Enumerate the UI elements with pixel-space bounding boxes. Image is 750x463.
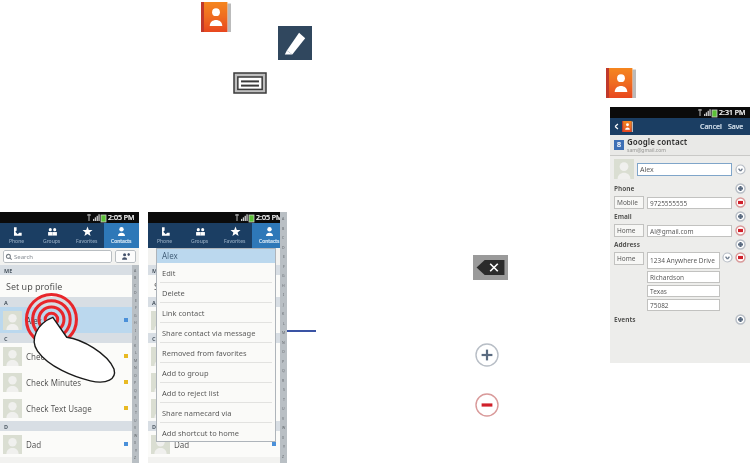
staticText: Search	[14, 253, 33, 261]
button[interactable]: Check Minutes	[3, 369, 136, 395]
staticText: Dad	[174, 439, 272, 450]
staticText: X	[134, 440, 137, 445]
staticText: A	[4, 299, 8, 306]
button[interactable]: Texas	[650, 285, 717, 297]
button[interactable]: Add shortcut to home	[162, 423, 276, 442]
button[interactable]: Richardson	[650, 271, 717, 283]
staticText: D	[282, 245, 285, 250]
button[interactable]: Check Minutes	[151, 369, 284, 395]
button[interactable]: Remove	[735, 252, 746, 263]
staticText: Phone	[9, 238, 25, 245]
button[interactable]: Removed from favorites	[162, 343, 276, 362]
button[interactable]: Back	[613, 123, 620, 130]
button[interactable]: Check Balance	[151, 343, 284, 369]
staticText: R	[134, 395, 137, 400]
staticText: C	[152, 335, 156, 342]
button[interactable]: Add	[735, 183, 746, 194]
staticText: Add to reject list	[162, 388, 219, 398]
staticText: Alex	[26, 315, 124, 326]
button[interactable]: Check Text Usage	[151, 395, 284, 421]
button[interactable]: 9725555555	[650, 197, 729, 209]
button[interactable]: Expand	[735, 164, 746, 175]
button[interactable]: Phone	[0, 223, 34, 248]
button[interactable]: Contacts	[622, 121, 633, 132]
staticText: B	[282, 226, 285, 231]
staticText: X	[282, 435, 285, 440]
staticText: ME	[152, 267, 161, 274]
button[interactable]: Remove	[735, 225, 746, 236]
button[interactable]: Remove	[735, 197, 746, 208]
button[interactable]: Alex	[3, 307, 136, 333]
staticText: H	[134, 320, 137, 325]
staticText: N	[134, 365, 137, 370]
button[interactable]: Check Text Usage	[3, 395, 136, 421]
button[interactable]: Share namecard via	[162, 403, 276, 422]
button[interactable]: Add	[735, 239, 746, 250]
staticText: Check Minutes	[26, 377, 124, 388]
button[interactable]: Edit	[278, 26, 312, 60]
staticText: C	[4, 335, 8, 342]
button[interactable]: Add to reject list	[162, 383, 276, 402]
button[interactable]: Cancel	[697, 122, 725, 132]
button[interactable]: Mobile	[617, 196, 644, 209]
button[interactable]: Edit	[162, 263, 276, 282]
staticText: Check Minutes	[174, 377, 272, 388]
button[interactable]: Menu	[234, 73, 266, 93]
button[interactable]: Contacts	[104, 223, 139, 248]
button[interactable]: Groups	[34, 223, 69, 248]
button[interactable]: Add	[735, 314, 746, 325]
button[interactable]: Al@gmail.com	[650, 225, 729, 237]
button[interactable]: Phone	[148, 223, 182, 248]
button[interactable]: Set up profile	[154, 275, 287, 297]
staticText: 2:05 PM	[256, 213, 283, 223]
button[interactable]: Contacts	[252, 223, 287, 248]
button[interactable]: Save	[725, 122, 747, 132]
button[interactable]: Share contact via message	[162, 323, 276, 342]
button[interactable]: Dad	[3, 431, 136, 457]
button[interactable]: Favorites	[69, 223, 104, 248]
button[interactable]: Expand	[722, 252, 733, 263]
button[interactable]: Add	[475, 343, 499, 367]
button[interactable]: Delete	[473, 255, 508, 280]
staticText: 75082	[650, 301, 669, 310]
button[interactable]: Search	[6, 250, 109, 263]
staticText: Dad	[26, 439, 124, 450]
staticText: A	[134, 268, 137, 273]
button[interactable]: Add contact	[115, 250, 136, 263]
staticText: W	[134, 433, 138, 438]
staticText: C	[282, 235, 285, 240]
button[interactable]: Groups	[182, 223, 217, 248]
staticText: R	[282, 378, 285, 383]
button[interactable]: 75082	[650, 299, 717, 311]
button[interactable]: Check Balance	[3, 343, 136, 369]
button[interactable]: Alex	[640, 163, 732, 176]
staticText: Check Balance	[26, 351, 124, 362]
button[interactable]: Add to group	[162, 363, 276, 382]
staticText: Removed from favorites	[162, 348, 247, 358]
staticText: D	[134, 290, 137, 295]
button[interactable]: Home	[617, 252, 644, 265]
staticText: K	[282, 311, 285, 316]
staticText: L	[283, 321, 285, 326]
button[interactable]: Dad	[151, 431, 284, 457]
button[interactable]: Add	[735, 211, 746, 222]
staticText: F	[135, 305, 137, 310]
staticText: Delete	[162, 288, 185, 298]
button[interactable]: Favorites	[217, 223, 252, 248]
staticText: G	[282, 273, 285, 278]
button[interactable]: Home	[617, 224, 644, 237]
button[interactable]: Remove	[475, 393, 499, 417]
button[interactable]: 1234 Anywhere Drive	[650, 252, 717, 269]
button[interactable]: Contacts	[606, 68, 636, 98]
button[interactable]: Alex	[151, 307, 284, 333]
staticText: Add shortcut to home	[162, 428, 240, 438]
button[interactable]: Contacts	[201, 2, 231, 32]
button[interactable]: Set up profile	[6, 275, 139, 297]
button[interactable]: Delete	[162, 283, 276, 302]
staticText: Home	[617, 254, 636, 263]
staticText: Y	[283, 444, 285, 449]
staticText: G	[134, 313, 137, 318]
staticText: Alex	[640, 165, 654, 175]
staticText: Google contact	[627, 136, 688, 147]
button[interactable]: Link contact	[162, 303, 276, 322]
